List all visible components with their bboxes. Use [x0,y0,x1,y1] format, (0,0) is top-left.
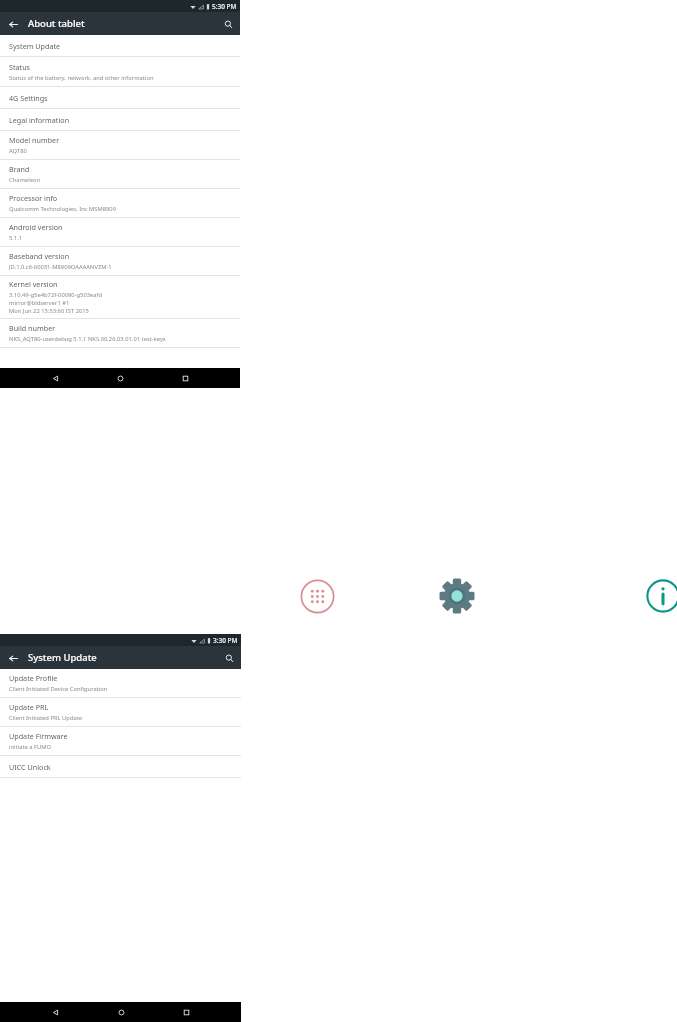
button[interactable]: Recent apps [175,368,195,388]
staticText: UICC Unlock [9,762,51,772]
button[interactable]: Update PRL [0,698,241,727]
staticText: Client Initiated PRL Update [9,714,83,722]
button[interactable]: Settings [438,577,476,615]
button[interactable]: Android version [0,218,240,247]
staticText: 5.1.1 [9,234,23,242]
staticText: Status [9,62,31,72]
staticText: Build number [9,323,56,333]
staticText: Client Initiated Device Configuration [9,685,108,693]
staticText: Chameleon [9,176,41,184]
button[interactable]: Recent apps [176,1002,196,1022]
staticText: NKS_AQT80-userdebug 5.1.1 NKS.00.26.03.0… [9,335,166,343]
button[interactable]: Home [111,1002,131,1022]
staticText: Brand [9,164,30,174]
button[interactable]: Build number [0,319,240,348]
staticText: Status of the battery, network, and othe… [9,74,154,82]
button[interactable]: System Update [0,35,240,57]
staticText: mirror@bldserver1 #1 [9,299,70,307]
staticText: Kernel version [9,279,58,289]
staticText: About tablet [28,17,85,30]
staticText: Update PRL [9,702,49,712]
button[interactable]: Update Profile [0,669,241,698]
staticText: initiate a FUMO [9,743,52,751]
button[interactable]: Brand [0,160,240,189]
staticText: Qualcomm Technologies, Inc MSM8909 [9,205,117,213]
button[interactable]: Status [0,57,240,87]
staticText: 3.10.49-g5e4b72f-00090-g503eafd [9,291,103,299]
staticText: System Update [28,651,97,664]
button[interactable]: Home [110,368,130,388]
button[interactable]: Legal information [0,109,240,131]
button[interactable]: Search [221,650,237,666]
staticText: Update Profile [9,673,58,683]
button[interactable]: UICC Unlock [0,756,241,778]
button[interactable]: Navigate up [5,650,21,666]
button[interactable]: Processor info [0,189,240,218]
button[interactable]: Update Firmware [0,727,241,756]
staticText: 4G Settings [9,93,48,103]
staticText: 5:30 PM [212,2,237,11]
staticText: AQT80 [9,147,27,155]
staticText: Legal information [9,115,70,125]
staticText: Model number [9,135,60,145]
button[interactable]: Baseband version [0,247,240,276]
staticText: JD.1.0.c6-00031-M8909OAAAANVZM-1 [9,263,112,271]
button[interactable]: Back [45,1002,65,1022]
button[interactable]: Navigate up [5,16,21,32]
button[interactable]: Model number [0,131,240,160]
button[interactable]: Search [220,16,236,32]
staticText: System Update [9,41,61,51]
button[interactable]: 4G Settings [0,87,240,109]
button[interactable]: Info [646,579,677,613]
staticText: Baseband version [9,251,70,261]
staticText: Mon Jun 22 15:53:60 IST 2015 [9,307,89,315]
button[interactable]: Back [45,368,65,388]
button[interactable]: Kernel version [0,276,240,319]
staticText: Update Firmware [9,731,68,741]
button[interactable]: All apps [300,579,335,614]
staticText: 3:30 PM [213,636,238,645]
staticText: Android version [9,222,63,232]
staticText: Processor info [9,193,58,203]
